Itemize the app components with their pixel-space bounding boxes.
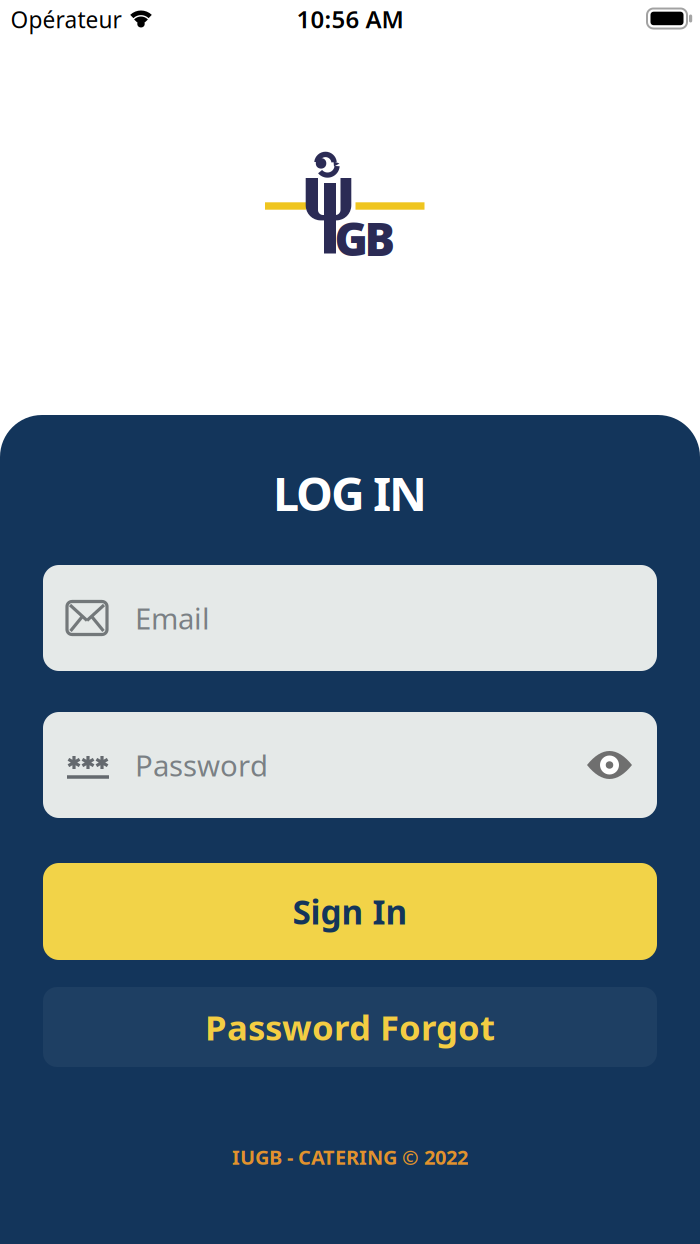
button[interactable]: Password Forgot [43,987,657,1067]
staticText: LOG IN [273,462,427,524]
staticText: Sign In [292,889,407,934]
button[interactable]: Sign In [43,863,657,960]
staticText: Password [135,745,268,784]
staticText: Opérateur [10,4,121,34]
staticText: GB [334,208,395,269]
staticText: Password Forgot [205,1004,495,1050]
button[interactable]: Email [43,565,657,671]
staticText: IUGB - CATERING © 2022 [232,1144,468,1170]
button[interactable]: Password [43,712,657,818]
staticText: 10:56 AM [296,3,403,35]
staticText: Email [135,598,210,637]
